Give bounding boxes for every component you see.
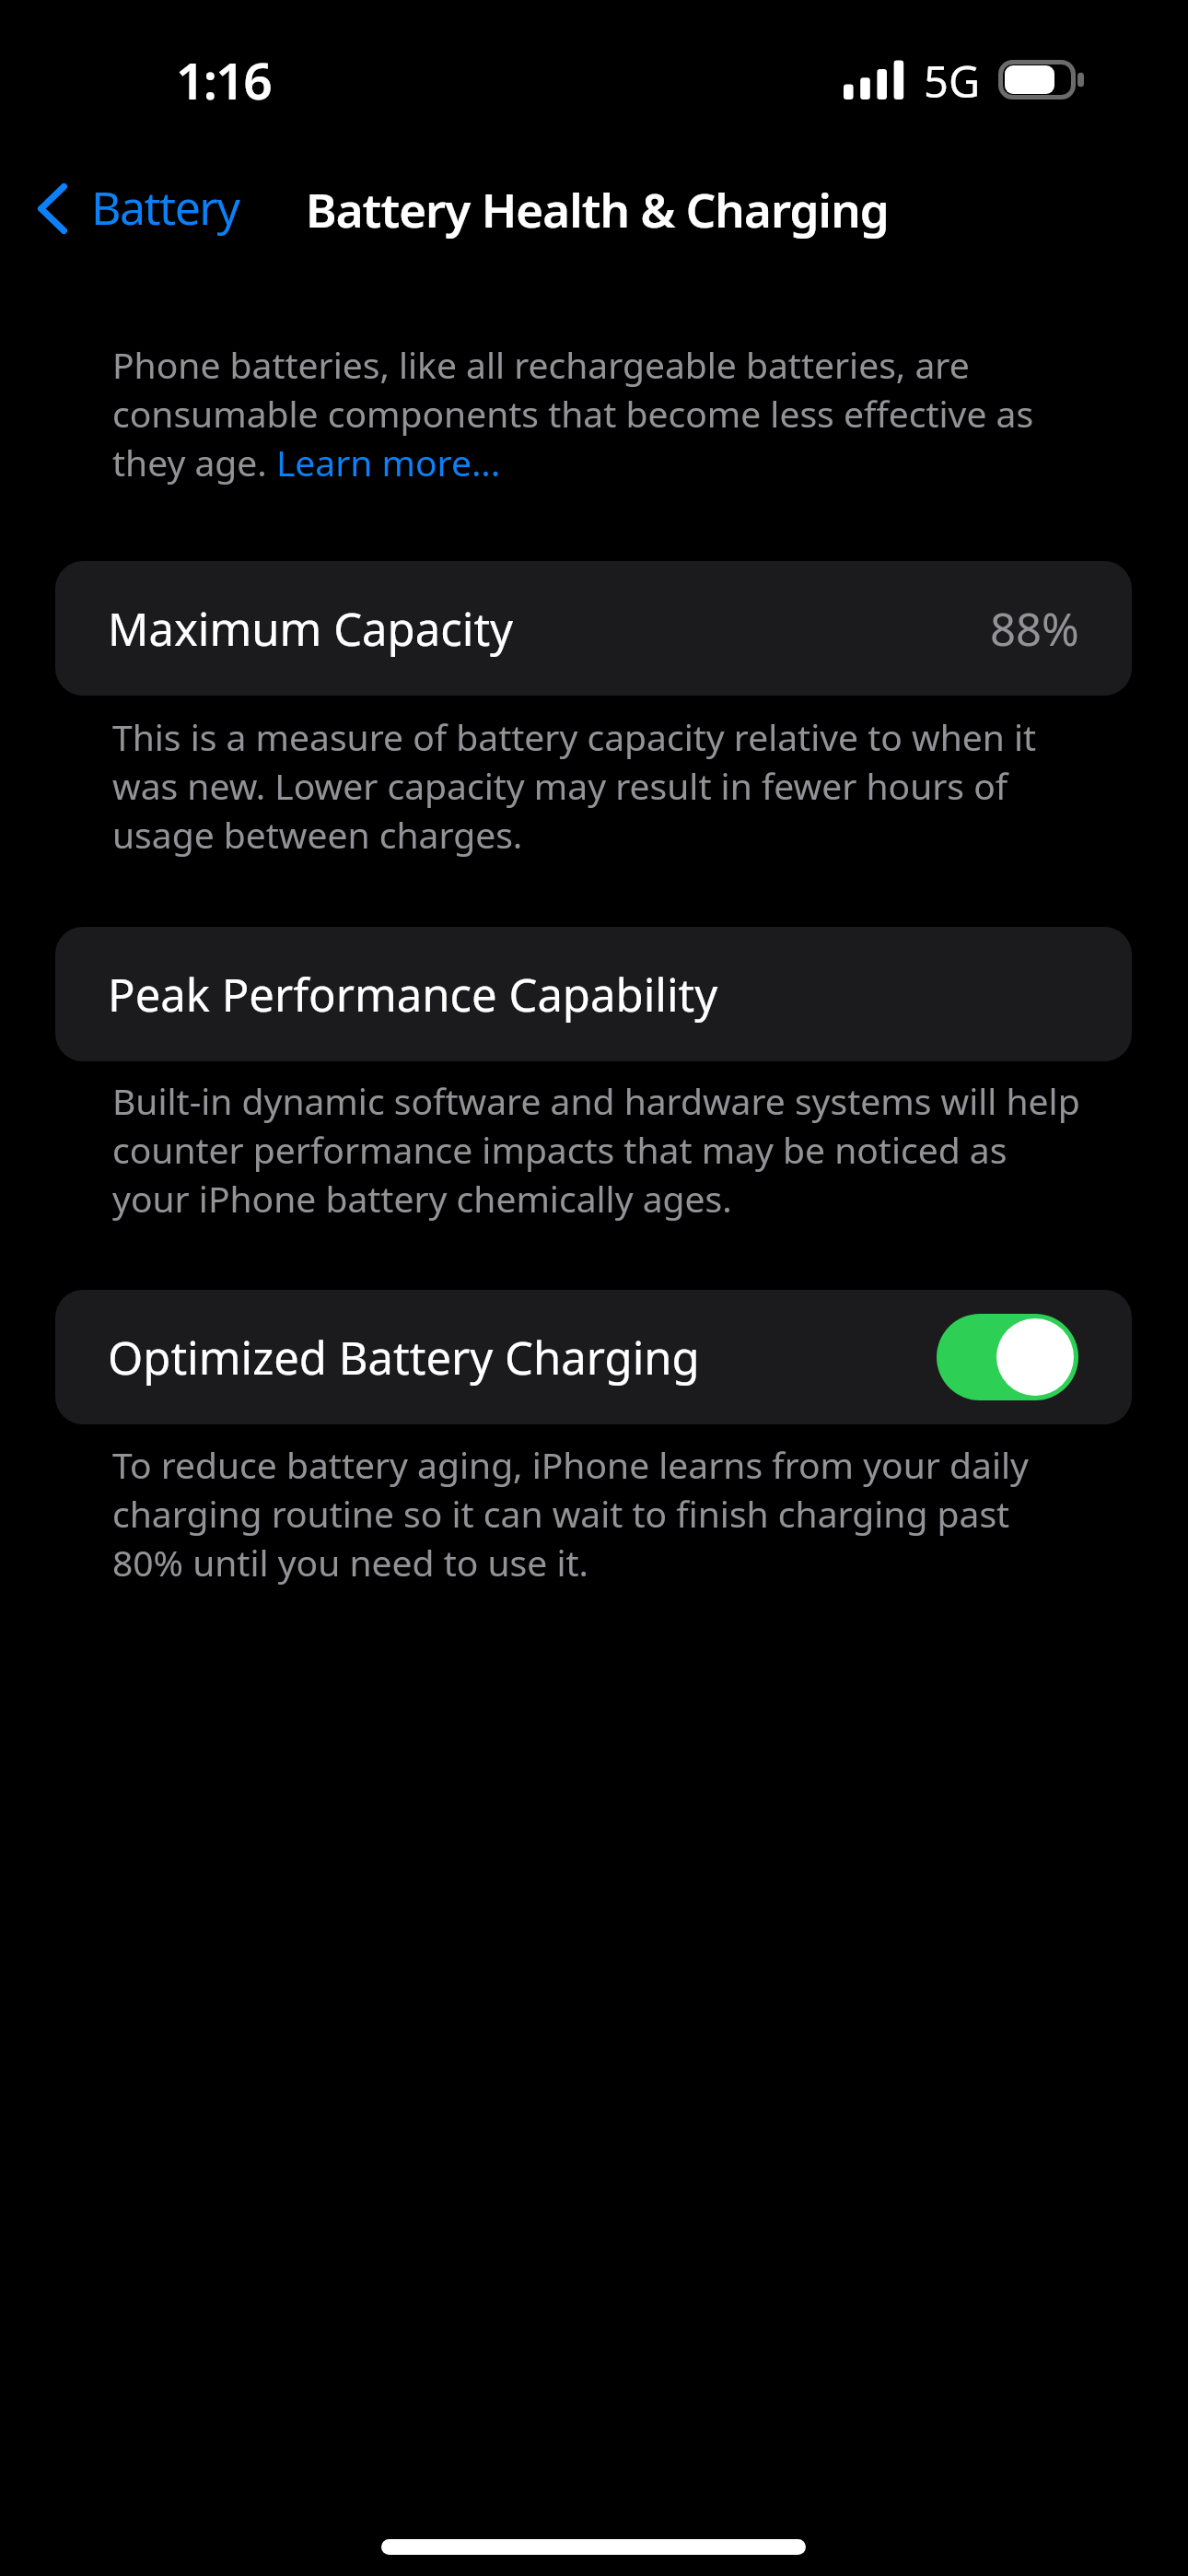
button[interactable]: Maximum Capacity <box>55 561 1132 696</box>
button[interactable]: Optimized Battery Charging <box>937 1314 1078 1400</box>
staticText: 1:16 <box>176 45 271 114</box>
staticText: To reduce battery aging, iPhone learns f… <box>112 1440 1081 1587</box>
staticText: 5G <box>924 52 981 111</box>
staticText: Battery <box>91 176 239 239</box>
staticText: This is a measure of battery capacity re… <box>112 712 1081 859</box>
staticText: Phone batteries, like all rechargeable b… <box>112 340 1081 486</box>
staticText: 88% <box>990 598 1079 660</box>
staticText: Peak Performance Capability <box>108 964 718 1025</box>
button[interactable]: Optimized Battery Charging <box>55 1290 1132 1424</box>
button[interactable]: Learn more <box>247 444 501 490</box>
staticText: Built-in dynamic software and hardware s… <box>112 1076 1081 1223</box>
button[interactable]: Peak Performance Capability <box>55 927 1132 1061</box>
staticText: Battery Health & Charging <box>306 177 889 240</box>
staticText: Optimized Battery Charging <box>108 1327 700 1388</box>
button[interactable]: Back to Battery <box>22 168 262 251</box>
staticText: Maximum Capacity <box>108 598 514 660</box>
